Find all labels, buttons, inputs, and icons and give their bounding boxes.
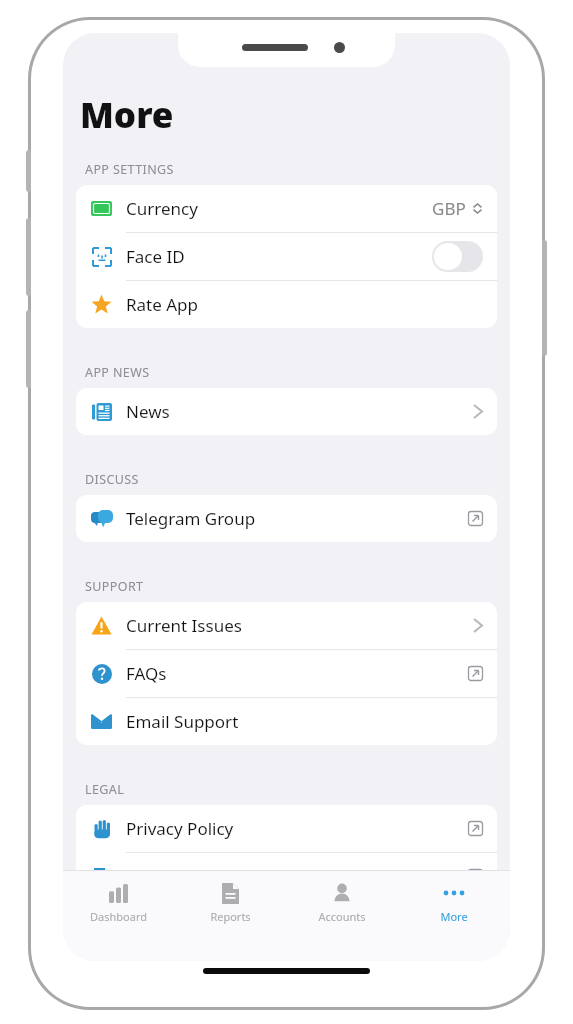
button[interactable]: More <box>398 871 510 933</box>
staticText: SUPPORT <box>85 578 144 595</box>
staticText: Telegram Group <box>126 507 256 530</box>
button[interactable]: Terms & Conditions <box>76 853 497 900</box>
staticText: APP SETTINGS <box>85 161 174 178</box>
staticText: Currency <box>126 197 198 220</box>
staticText: News <box>126 400 170 423</box>
staticText: Email Support <box>126 710 239 733</box>
button[interactable]: Privacy Policy <box>76 805 497 852</box>
staticText: FAQs <box>126 662 167 685</box>
button[interactable]: Currency <box>76 185 497 232</box>
other: Opens external link <box>468 869 483 884</box>
staticText: Accounts <box>318 909 366 924</box>
staticText: Face ID <box>126 245 185 268</box>
staticText: More <box>80 91 174 139</box>
button[interactable]: Dashboard <box>63 871 174 933</box>
staticText: Rate App <box>126 293 199 316</box>
staticText: Reports <box>210 909 251 924</box>
other: Opens external link <box>468 666 483 681</box>
button[interactable]: Current Issues <box>76 602 497 649</box>
button[interactable]: Telegram Group <box>76 495 497 542</box>
staticText: Terms & Conditions <box>126 865 283 888</box>
button[interactable]: Face ID <box>76 233 497 280</box>
staticText: Privacy Policy <box>126 817 234 840</box>
staticText: GBP <box>432 197 466 220</box>
staticText: LEGAL <box>85 781 125 798</box>
other: Opens external link <box>468 821 483 836</box>
button[interactable]: FAQs <box>76 650 497 697</box>
button[interactable]: Face ID toggle <box>432 241 483 272</box>
button[interactable]: Accounts <box>286 871 398 933</box>
staticText: More <box>440 909 468 924</box>
staticText: APP NEWS <box>85 364 150 381</box>
button[interactable]: News <box>76 388 497 435</box>
button[interactable]: Email Support <box>76 698 497 745</box>
button[interactable]: Rate App <box>76 281 497 328</box>
staticText: Dashboard <box>90 909 147 924</box>
staticText: DISCUSS <box>85 471 139 488</box>
other: Opens external link <box>468 511 483 526</box>
button[interactable]: Reports <box>174 871 286 933</box>
staticText: Current Issues <box>126 614 242 637</box>
